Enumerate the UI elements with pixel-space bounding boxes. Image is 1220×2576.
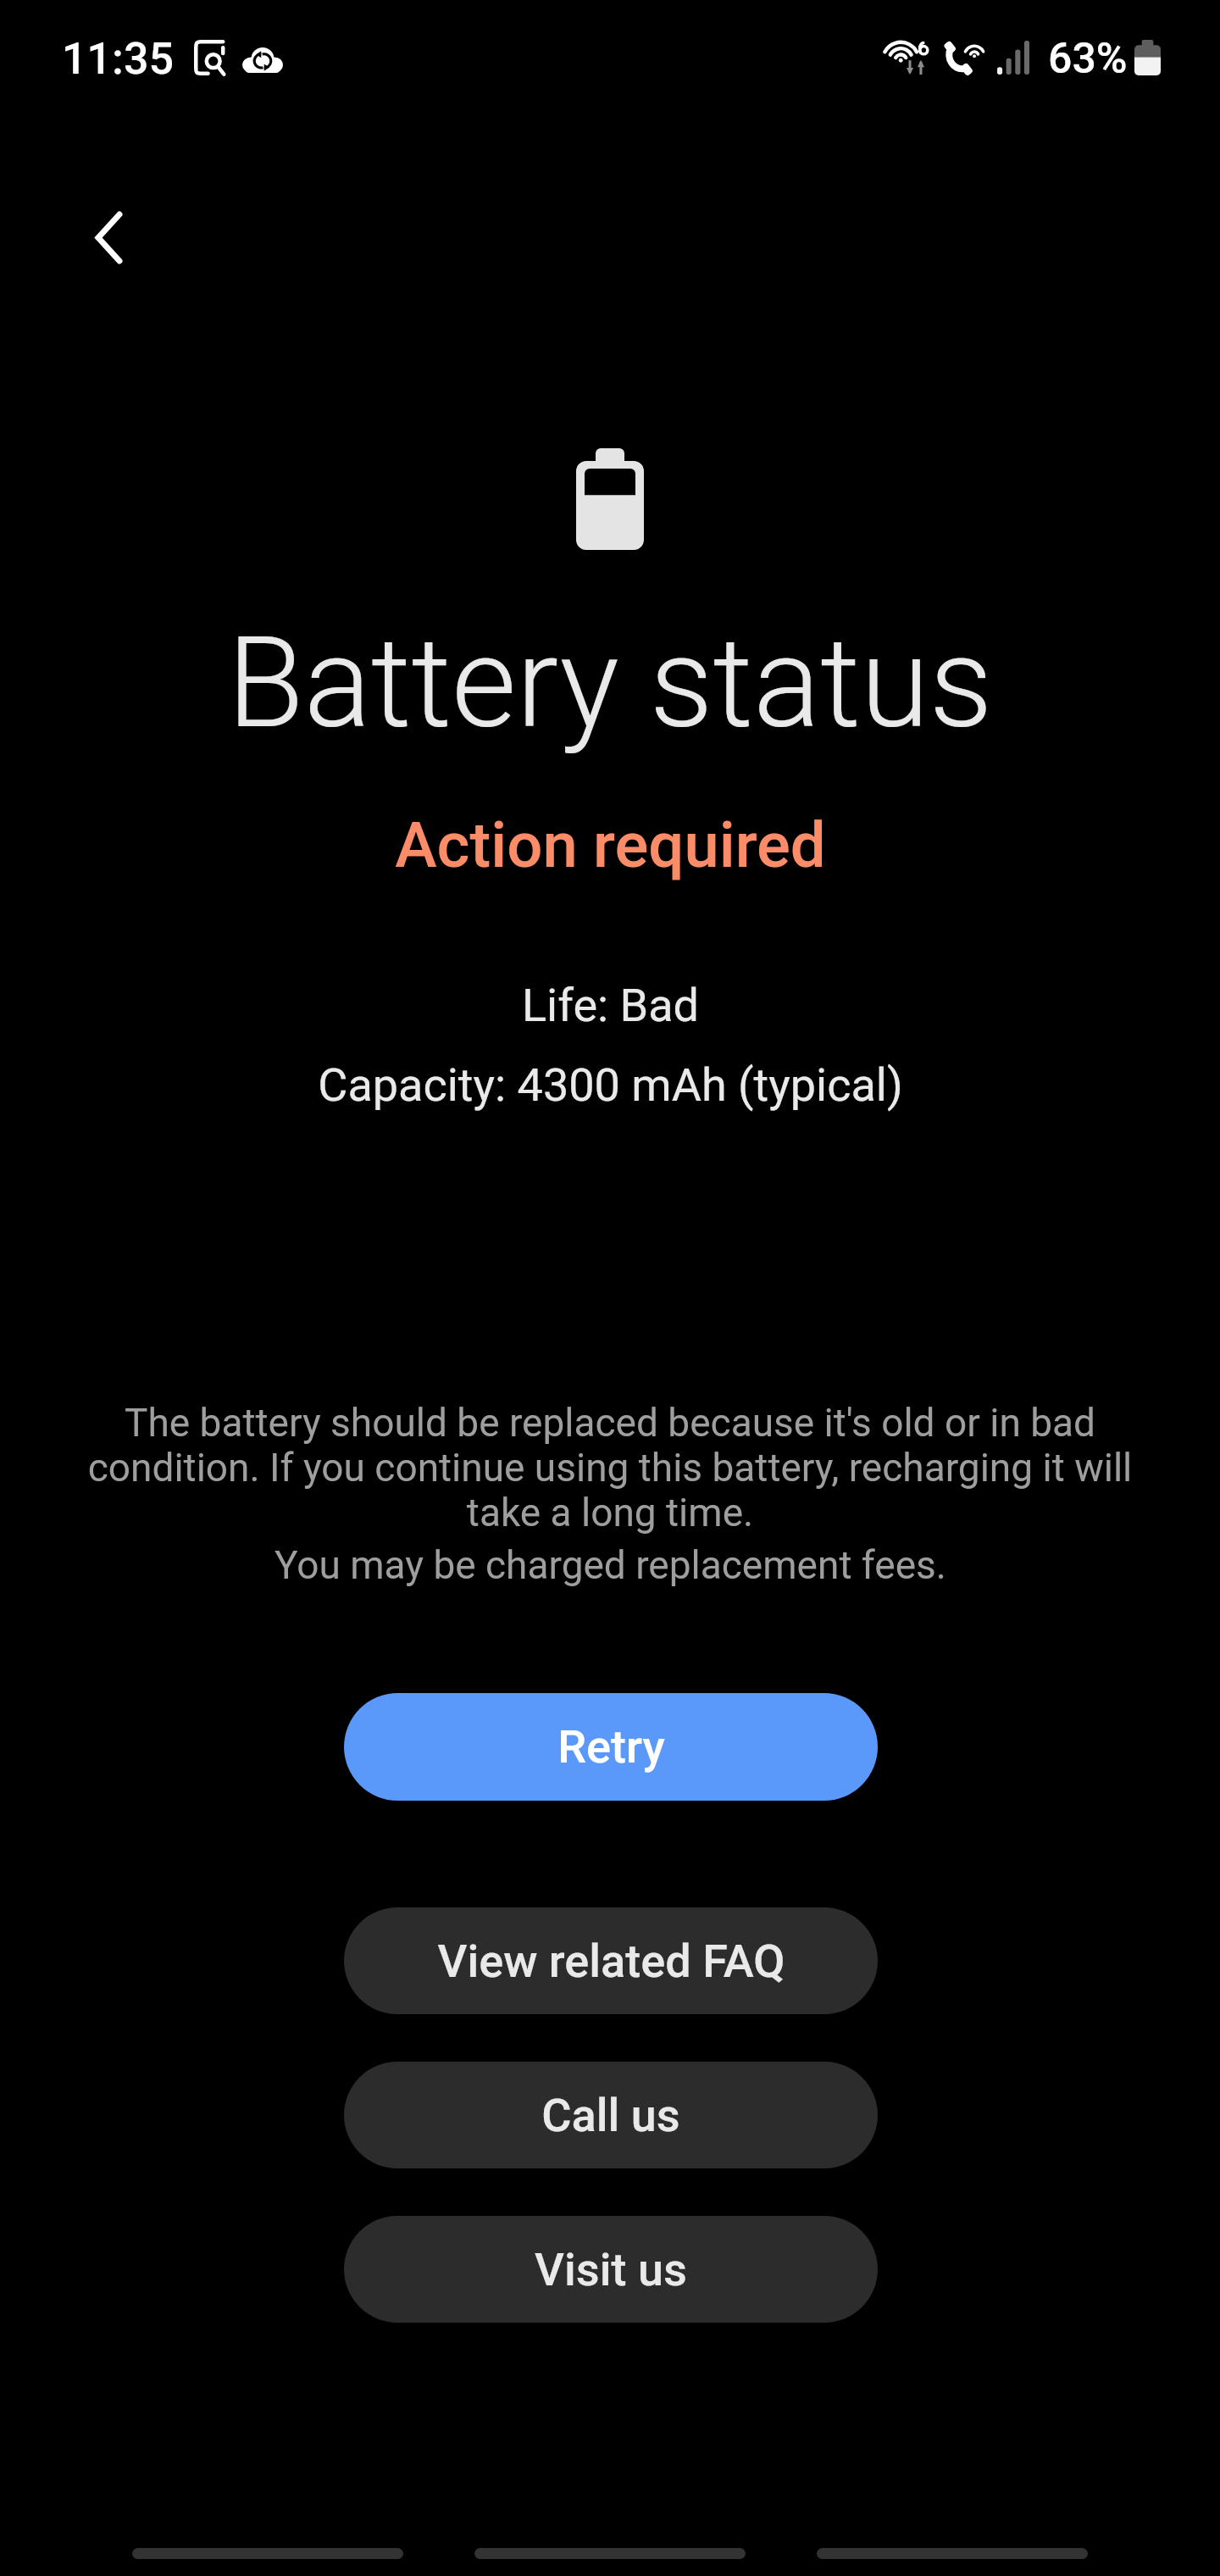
staticText: The battery should be replaced because i… xyxy=(81,1400,1139,1535)
staticText: Visit us xyxy=(535,2243,687,2296)
button[interactable]: Navigate up xyxy=(59,188,158,286)
button[interactable]: Visit us xyxy=(344,2216,878,2323)
staticText: Retry xyxy=(557,1720,665,1774)
staticText: 11:35 xyxy=(62,33,175,85)
button[interactable]: Retry xyxy=(344,1693,878,1801)
staticText: Action required xyxy=(395,808,826,882)
button[interactable]: Home xyxy=(474,2548,746,2559)
button[interactable]: Back xyxy=(817,2548,1088,2559)
staticText: Call us xyxy=(541,2089,680,2142)
staticText: 63% xyxy=(1048,34,1128,84)
staticText: Life: Bad xyxy=(522,979,699,1032)
staticText: You may be charged replacement fees. xyxy=(274,1542,946,1588)
staticText: Battery status xyxy=(227,610,993,757)
button[interactable]: Call us xyxy=(344,2062,878,2168)
button[interactable]: View related FAQ xyxy=(344,1907,878,2014)
staticText: View related FAQ xyxy=(437,1935,785,1988)
button[interactable]: Recents xyxy=(132,2548,403,2559)
staticText: Capacity: 4300 mAh (typical) xyxy=(318,1058,903,1112)
